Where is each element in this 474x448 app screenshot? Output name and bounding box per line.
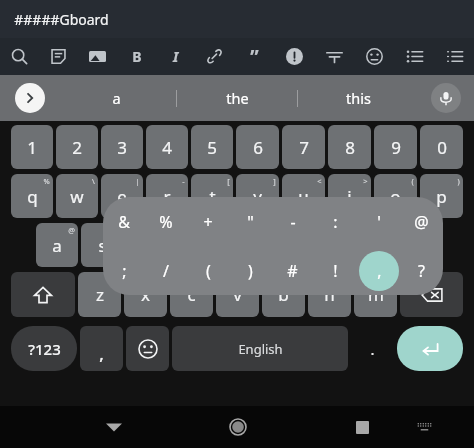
- button[interactable]: o: [374, 174, 417, 218]
- button[interactable]: Back: [82, 406, 145, 448]
- button[interactable]: e: [101, 174, 143, 218]
- button[interactable]: ?123: [11, 326, 77, 371]
- button[interactable]: i: [328, 174, 371, 218]
- staticText: k: [367, 234, 377, 257]
- staticText: 1: [27, 136, 37, 159]
- button[interactable]: a: [56, 75, 176, 121]
- button[interactable]: 9: [374, 125, 417, 169]
- button[interactable]: :: [314, 197, 357, 246]
- button[interactable]: Home: [207, 406, 269, 448]
- button[interactable]: v: [216, 272, 259, 317]
- button[interactable]: ": [229, 197, 271, 246]
- button[interactable]: z: [78, 272, 121, 317]
- button[interactable]: 4: [146, 125, 188, 169]
- staticText: >: [363, 176, 368, 186]
- button[interactable]: Search: [0, 38, 39, 75]
- button[interactable]: m: [354, 272, 397, 317]
- button[interactable]: 5: [191, 125, 233, 169]
- button[interactable]: p: [420, 174, 463, 218]
- button[interactable]: t: [191, 174, 233, 218]
- button[interactable]: +: [187, 197, 229, 246]
- button[interactable]: !: [314, 246, 357, 295]
- button[interactable]: k: [351, 223, 393, 267]
- staticText: /: [163, 260, 169, 282]
- button[interactable]: Numbered list: [434, 38, 474, 75]
- button[interactable]: 7: [282, 125, 325, 169]
- button[interactable]: Bold: [117, 38, 156, 75]
- button[interactable]: d: [126, 223, 168, 267]
- button[interactable]: q: [11, 174, 53, 218]
- button[interactable]: Bullet list: [394, 38, 434, 75]
- button[interactable]: x: [124, 272, 167, 317]
- button[interactable]: Voice input: [431, 83, 461, 113]
- button[interactable]: Shift: [11, 272, 75, 317]
- button[interactable]: Keyboard: [393, 406, 455, 448]
- button[interactable]: u: [282, 174, 325, 218]
- button[interactable]: y: [236, 174, 279, 218]
- button[interactable]: c: [170, 272, 213, 317]
- button[interactable]: l: [396, 223, 438, 267]
- button[interactable]: a: [36, 223, 78, 267]
- button[interactable]: #: [271, 246, 314, 295]
- staticText: #: [115, 225, 120, 235]
- button[interactable]: Emoji: [126, 326, 169, 371]
- button[interactable]: Alert: [274, 38, 314, 75]
- button[interactable]: ,: [80, 326, 123, 371]
- staticText: ': [208, 274, 210, 284]
- button[interactable]: 2: [56, 125, 98, 169]
- staticText: #####Gboard: [14, 10, 109, 29]
- button[interactable]: f: [171, 223, 213, 267]
- staticText: (: [206, 260, 211, 282]
- button[interactable]: Clipboard: [39, 38, 78, 75]
- button[interactable]: -: [271, 197, 314, 246]
- button[interactable]: b: [262, 272, 305, 317]
- button[interactable]: Italic: [156, 38, 195, 75]
- button[interactable]: ,: [357, 246, 400, 295]
- button[interactable]: %: [145, 197, 187, 246]
- staticText: ,: [377, 260, 382, 282]
- staticText: -: [182, 176, 185, 186]
- staticText: 6: [253, 136, 263, 159]
- button[interactable]: s: [81, 223, 123, 267]
- button[interactable]: /: [145, 246, 187, 295]
- button[interactable]: ': [357, 197, 400, 246]
- button[interactable]: the: [177, 75, 297, 121]
- button[interactable]: Expand toolbar: [15, 83, 45, 113]
- button[interactable]: 8: [328, 125, 371, 169]
- button[interactable]: Format: [314, 38, 354, 75]
- button[interactable]: Recents: [331, 406, 393, 448]
- staticText: ): [248, 260, 253, 282]
- button[interactable]: 0: [420, 125, 463, 169]
- button[interactable]: @: [400, 197, 443, 246]
- button[interactable]: 3: [101, 125, 143, 169]
- button[interactable]: j: [306, 223, 348, 267]
- button[interactable]: .: [351, 326, 394, 371]
- staticText: B: [132, 47, 142, 66]
- button[interactable]: English: [172, 326, 348, 371]
- button[interactable]: Quote: [234, 38, 274, 75]
- button[interactable]: ?: [400, 246, 443, 295]
- button[interactable]: 1: [11, 125, 53, 169]
- button[interactable]: 6: [236, 125, 279, 169]
- staticText: $: [160, 225, 165, 235]
- button[interactable]: this: [298, 75, 418, 121]
- button[interactable]: Link: [195, 38, 234, 75]
- button[interactable]: Backspace: [400, 272, 463, 317]
- button[interactable]: Image: [78, 38, 117, 75]
- button[interactable]: ): [229, 246, 271, 295]
- button[interactable]: (: [187, 246, 229, 295]
- button[interactable]: w: [56, 174, 98, 218]
- button[interactable]: h: [261, 223, 303, 267]
- button[interactable]: r: [146, 174, 188, 218]
- button[interactable]: &: [103, 197, 145, 246]
- button[interactable]: ;: [103, 246, 145, 295]
- staticText: c: [187, 283, 196, 306]
- button[interactable]: n: [308, 272, 351, 317]
- button[interactable]: g: [216, 223, 258, 267]
- button[interactable]: Emoji: [354, 38, 394, 75]
- staticText: p: [436, 185, 447, 208]
- button[interactable]: Enter: [397, 326, 463, 371]
